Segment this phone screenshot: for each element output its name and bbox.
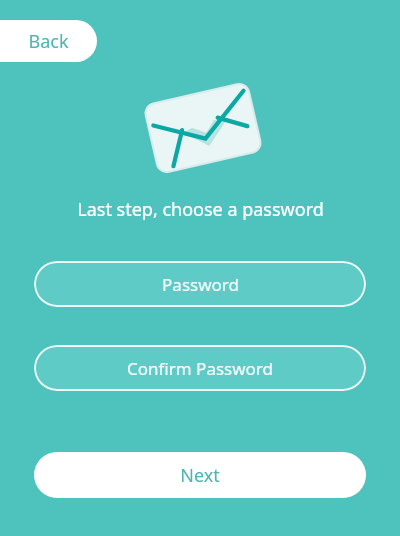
staticText: Password	[162, 273, 239, 296]
button[interactable]: Password	[34, 261, 366, 307]
staticText: Last step, choose a password	[77, 197, 324, 222]
button[interactable]: Next	[34, 452, 366, 498]
staticText: Confirm Password	[127, 357, 273, 380]
button[interactable]: Back	[0, 20, 97, 62]
staticText: Next	[180, 463, 220, 488]
staticText: Back	[28, 29, 69, 54]
button[interactable]: Confirm Password	[34, 345, 366, 391]
